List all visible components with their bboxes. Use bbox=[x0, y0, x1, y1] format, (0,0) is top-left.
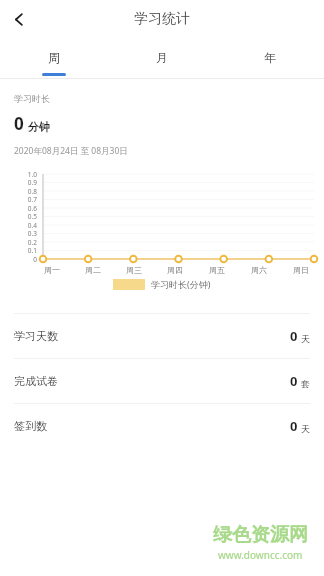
staticText: 0.1 bbox=[0, 246, 37, 255]
staticText: 1.0 bbox=[0, 170, 37, 179]
staticText: 周三 bbox=[126, 265, 142, 275]
staticText: 月 bbox=[156, 50, 168, 65]
staticText: 周日 bbox=[293, 265, 309, 275]
staticText: 学习天数 bbox=[14, 329, 58, 343]
staticText: 0.2 bbox=[0, 238, 37, 247]
staticText: 学习统计 bbox=[134, 10, 190, 28]
button[interactable]: 签到数 bbox=[0, 404, 324, 448]
button[interactable]: 学习天数 bbox=[0, 314, 324, 358]
staticText: 套 bbox=[301, 378, 310, 389]
staticText: 周五 bbox=[209, 265, 225, 275]
staticText: 学习时长 bbox=[14, 93, 50, 104]
button[interactable]: 年 bbox=[216, 38, 324, 78]
staticText: 天 bbox=[301, 333, 310, 344]
button[interactable]: 月 bbox=[108, 38, 216, 78]
staticText: 0.7 bbox=[0, 195, 37, 204]
staticText: 周二 bbox=[85, 265, 101, 275]
staticText: 0.9 bbox=[0, 178, 37, 187]
staticText: 学习时长(分钟) bbox=[151, 278, 211, 290]
staticText: 绿色资源网 bbox=[213, 523, 308, 547]
button[interactable]: 周 bbox=[0, 38, 108, 78]
staticText: 0.3 bbox=[0, 229, 37, 238]
staticText: 0.4 bbox=[0, 221, 37, 230]
staticText: 年 bbox=[264, 50, 276, 65]
staticText: 分钟 bbox=[28, 120, 50, 134]
staticText: 签到数 bbox=[14, 419, 47, 433]
staticText: 周六 bbox=[251, 265, 267, 275]
button[interactable]: Back bbox=[0, 0, 38, 38]
button[interactable]: 完成试卷 bbox=[0, 359, 324, 403]
staticText: 周四 bbox=[167, 265, 183, 275]
staticText: 0.6 bbox=[0, 204, 37, 213]
staticText: 0 bbox=[290, 372, 298, 390]
staticText: 0 bbox=[0, 255, 37, 264]
staticText: 完成试卷 bbox=[14, 374, 58, 388]
staticText: www.downcc.com bbox=[218, 548, 303, 562]
staticText: 0 bbox=[290, 417, 298, 435]
staticText: 0.8 bbox=[0, 187, 37, 196]
staticText: 周 bbox=[48, 50, 60, 65]
staticText: 2020年08月24日 至 08月30日 bbox=[14, 145, 128, 157]
staticText: 0 bbox=[290, 327, 298, 345]
staticText: 0.5 bbox=[0, 212, 37, 221]
staticText: 天 bbox=[301, 423, 310, 434]
staticText: 0 bbox=[14, 112, 24, 135]
staticText: 周一 bbox=[44, 265, 60, 275]
